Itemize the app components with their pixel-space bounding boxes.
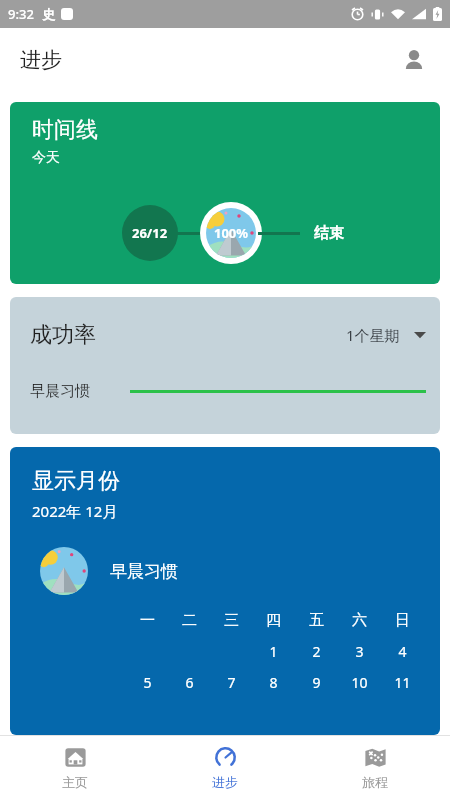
- staticText: 进步: [20, 47, 62, 73]
- staticText: 8: [269, 673, 278, 692]
- staticText: 早晨习惯: [110, 561, 178, 582]
- staticText: 旅程: [362, 774, 388, 790]
- staticText: 一: [140, 611, 155, 630]
- staticText: 早晨习惯: [30, 382, 90, 401]
- staticText: 显示月份: [32, 467, 120, 495]
- button[interactable]: Home: [0, 736, 150, 800]
- staticText: 4: [398, 642, 407, 661]
- staticText: 1个星期: [346, 325, 400, 345]
- staticText: 9:32: [8, 5, 34, 23]
- button[interactable]: Journeys: [300, 736, 450, 800]
- other: Progress: [214, 746, 237, 769]
- other: Journeys: [364, 746, 387, 769]
- button[interactable]: 显示月份: [10, 447, 440, 735]
- staticText: 进步: [212, 774, 238, 790]
- staticText: 四: [266, 611, 281, 630]
- staticText: 7: [227, 673, 236, 692]
- staticText: 五: [309, 611, 324, 630]
- staticText: 今天: [32, 149, 60, 167]
- button[interactable]: 1个星期: [346, 325, 426, 345]
- staticText: 6: [185, 673, 194, 692]
- staticText: 10: [351, 673, 368, 692]
- staticText: 时间线: [32, 116, 98, 144]
- staticText: 主页: [62, 774, 88, 790]
- staticText: 六: [352, 611, 367, 630]
- staticText: 三: [224, 611, 239, 630]
- staticText: 日: [395, 611, 410, 630]
- staticText: 100%: [214, 224, 249, 242]
- staticText: 2022年 12月: [32, 501, 118, 521]
- button[interactable]: Progress: [150, 736, 300, 800]
- other: Home: [64, 746, 87, 769]
- staticText: 9: [312, 673, 321, 692]
- staticText: 二: [182, 611, 197, 630]
- staticText: 26/12: [132, 224, 168, 242]
- button[interactable]: 时间线: [10, 102, 440, 284]
- staticText: 11: [394, 673, 411, 692]
- staticText: 5: [143, 673, 152, 692]
- staticText: 结束: [314, 224, 344, 243]
- button[interactable]: Account: [392, 38, 436, 82]
- staticText: 2: [312, 642, 321, 661]
- staticText: 成功率: [30, 321, 96, 349]
- staticText: 1: [269, 642, 278, 661]
- staticText: 3: [355, 642, 364, 661]
- staticText: 史: [42, 6, 55, 22]
- button[interactable]: 成功率: [10, 297, 440, 434]
